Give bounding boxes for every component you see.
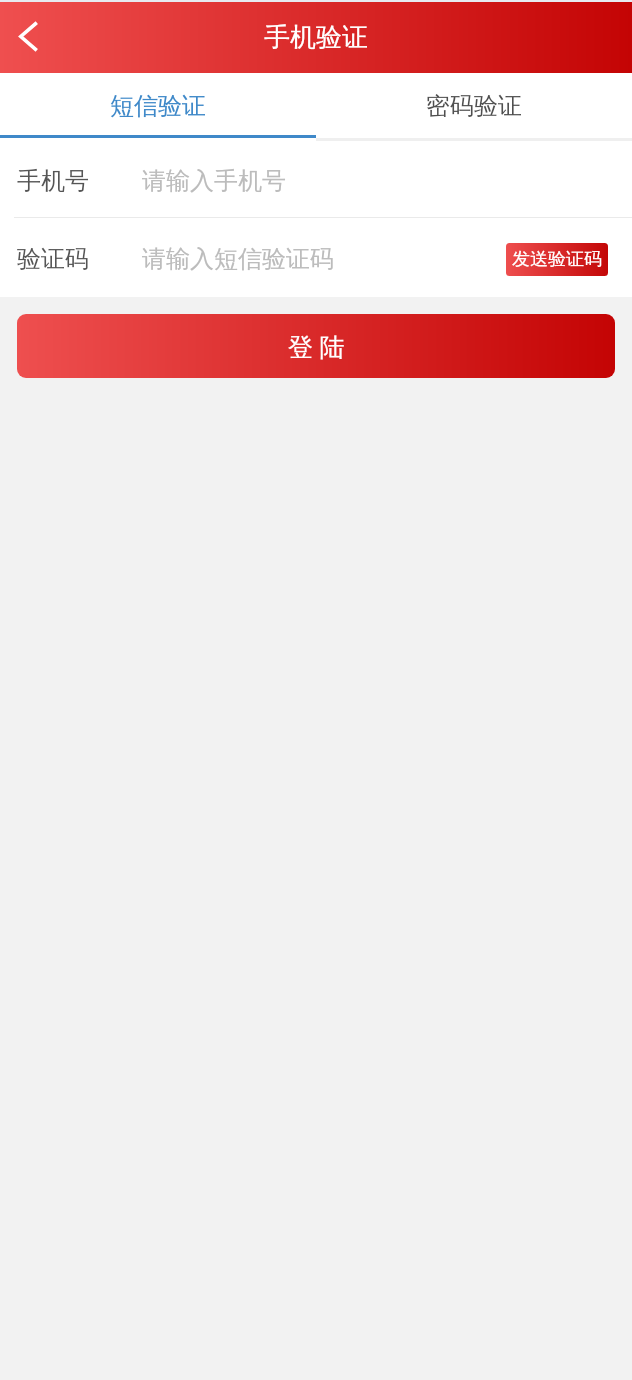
staticText: 手机号	[17, 166, 89, 196]
staticText: 短信验证	[110, 91, 206, 121]
button[interactable]: 短信验证	[0, 73, 316, 138]
button[interactable]: 手机号	[0, 141, 632, 217]
staticText: 手机验证	[264, 21, 368, 54]
staticText: 发送验证码	[512, 248, 602, 271]
button[interactable]: 发送验证码	[506, 243, 608, 276]
button[interactable]: Back	[0, 11, 54, 65]
button[interactable]: 登 陆	[17, 314, 615, 378]
staticText: 验证码	[17, 244, 89, 274]
staticText: 密码验证	[426, 91, 522, 121]
staticText: 登 陆	[288, 329, 345, 363]
staticText: 请输入手机号	[142, 166, 286, 196]
button[interactable]: 验证码	[0, 218, 506, 297]
button[interactable]: 密码验证	[316, 73, 632, 138]
staticText: 请输入短信验证码	[142, 244, 334, 274]
